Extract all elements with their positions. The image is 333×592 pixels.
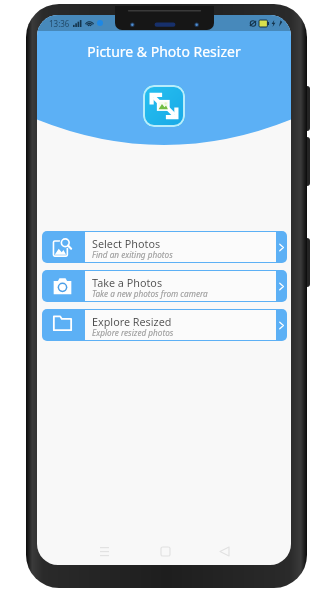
staticText: Take a new photos from camera (92, 288, 208, 299)
button[interactable]: Home (154, 540, 176, 562)
button[interactable]: Back (213, 540, 235, 562)
staticText: Take a Photos (92, 275, 163, 290)
button[interactable]: Select Photos (42, 231, 287, 263)
button[interactable]: Take a Photos (42, 270, 287, 302)
staticText: Find an exiting photos (92, 249, 173, 260)
staticText: 13:36 (49, 18, 70, 29)
button[interactable]: Explore Resized (42, 309, 287, 341)
staticText: Select Photos (92, 236, 161, 251)
staticText: Explore Resized (92, 314, 172, 329)
staticText: Explore resized photos (92, 327, 174, 338)
button[interactable]: Recent apps (93, 540, 115, 562)
staticText: Picture & Photo Resizer (87, 42, 241, 60)
